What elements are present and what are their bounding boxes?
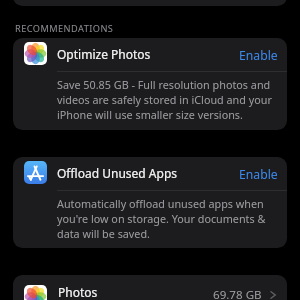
- button[interactable]: Enable: [231, 38, 286, 71]
- button[interactable]: Optimize Photos: [13, 38, 287, 71]
- staticText: Offload Unused Apps: [57, 165, 178, 181]
- button[interactable]: Photos: [13, 275, 287, 300]
- button[interactable]: Enable: [231, 157, 286, 190]
- staticText: RECOMMENDATIONS: [15, 22, 114, 35]
- staticText: Automatically offload unused apps when y…: [57, 196, 277, 241]
- staticText: Optimize Photos: [57, 46, 151, 62]
- staticText: Enable: [239, 47, 278, 64]
- staticText: Photos: [58, 284, 98, 300]
- button[interactable]: Offload Unused Apps: [13, 157, 287, 190]
- other: Open Photos storage details: [269, 291, 277, 299]
- staticText: 69.78 GB: [213, 287, 262, 300]
- staticText: Save 50.85 GB - Full resolution photos a…: [57, 77, 277, 122]
- staticText: Enable: [239, 166, 278, 183]
